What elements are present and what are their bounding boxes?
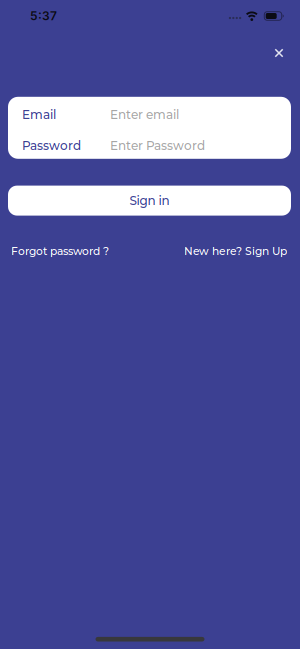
staticText: 5:37	[30, 9, 57, 23]
staticText: Sign in	[129, 193, 169, 208]
button[interactable]	[270, 44, 287, 61]
staticText: Enter Password	[110, 138, 205, 153]
button[interactable]: Email	[8, 97, 291, 128]
staticText: New here? Sign Up	[184, 245, 287, 258]
button[interactable]: Password	[8, 128, 291, 159]
button[interactable]: New here? Sign Up	[184, 245, 287, 258]
staticText: Password	[22, 138, 81, 153]
staticText: Forgot password ?	[11, 245, 109, 258]
staticText: Email	[22, 107, 56, 122]
staticText: Enter email	[110, 107, 179, 122]
button[interactable]: Forgot password ?	[11, 245, 109, 258]
button[interactable]: Sign in	[8, 186, 291, 216]
